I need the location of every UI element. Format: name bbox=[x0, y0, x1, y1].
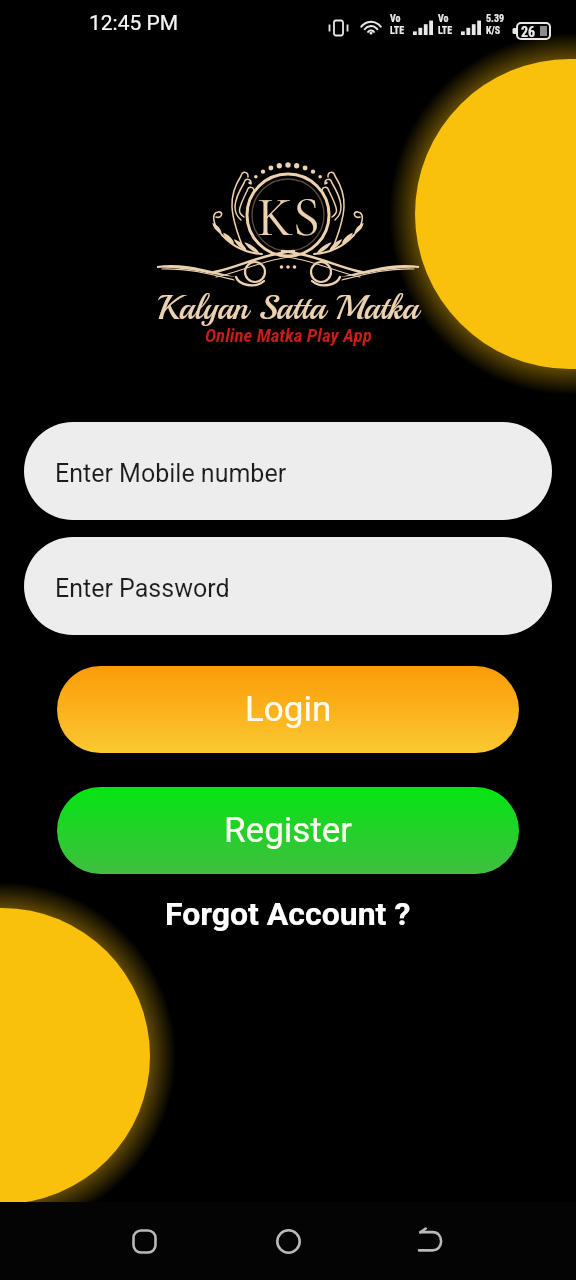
button[interactable]: Forgot Account ? bbox=[158, 890, 418, 938]
staticText: KS bbox=[257, 184, 320, 251]
button[interactable]: Home bbox=[264, 1217, 312, 1265]
button[interactable]: Enter Mobile number bbox=[24, 422, 552, 520]
button[interactable]: Enter Password bbox=[24, 537, 552, 635]
button[interactable]: Login bbox=[57, 666, 519, 753]
staticText: K/S bbox=[486, 25, 501, 37]
button[interactable]: Back bbox=[407, 1217, 455, 1265]
staticText: Vo bbox=[438, 13, 449, 25]
staticText: Enter Mobile number bbox=[55, 459, 287, 488]
staticText: 26 bbox=[521, 24, 536, 40]
staticText: 5.39 bbox=[486, 13, 505, 25]
button[interactable]: Recent apps bbox=[120, 1217, 168, 1265]
staticText: Login bbox=[245, 689, 332, 730]
button[interactable]: Register bbox=[57, 787, 519, 874]
staticText: Vo bbox=[390, 13, 401, 25]
staticText: Register bbox=[224, 810, 353, 851]
staticText: LTE bbox=[438, 25, 453, 37]
staticText: 12:45 PM bbox=[89, 11, 179, 36]
staticText: Forgot Account ? bbox=[165, 895, 411, 933]
staticText: Kalyan Satta Matka bbox=[157, 287, 419, 330]
staticText: Enter Password bbox=[55, 574, 230, 603]
staticText: Online Matka Play App bbox=[205, 324, 372, 346]
staticText: LTE bbox=[390, 25, 405, 37]
